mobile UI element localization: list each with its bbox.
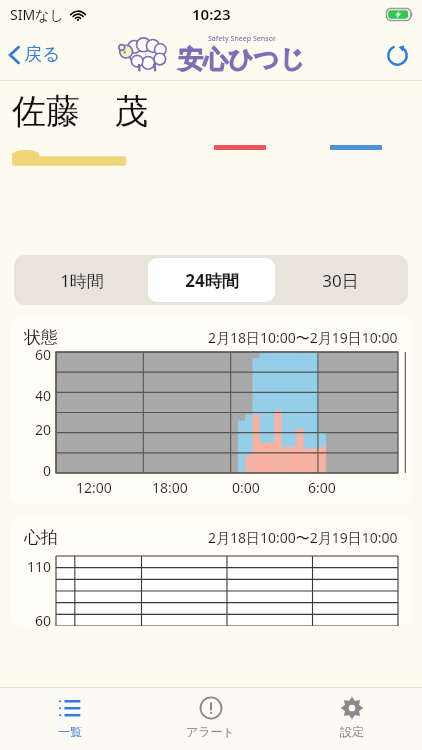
staticText: 設定 (340, 724, 364, 739)
staticText: 20 (35, 420, 52, 439)
staticText: 30日 (322, 269, 359, 292)
staticText: 6:00 (308, 478, 336, 497)
staticText: 安心ひつじ (178, 44, 305, 75)
staticText: 心拍 (24, 527, 58, 548)
button[interactable]: 30日 (277, 258, 404, 302)
staticText: SIMなし (10, 5, 64, 24)
button[interactable]: Refresh (373, 30, 422, 79)
staticText: 1時間 (60, 269, 104, 292)
button[interactable]: 24時間 (148, 258, 275, 302)
button[interactable]: 戻る (0, 37, 69, 72)
button[interactable]: 1時間 (18, 258, 146, 302)
button[interactable]: 設定 (281, 688, 422, 750)
staticText: 18:00 (152, 478, 188, 497)
staticText: 40 (35, 386, 52, 405)
staticText: 10:23 (192, 4, 231, 24)
staticText: 12:00 (76, 478, 112, 497)
button[interactable]: 状態 (10, 317, 412, 505)
staticText: 状態 (24, 327, 58, 348)
button[interactable]: アラート (140, 688, 281, 750)
staticText: 佐藤 茂 (12, 87, 148, 133)
staticText: 0:00 (232, 478, 260, 497)
button[interactable]: 心拍 (10, 517, 412, 626)
staticText: 戻る (24, 43, 61, 66)
staticText: Safety Sheep Sensor (208, 34, 276, 44)
staticText: 0 (43, 461, 52, 480)
staticText: 24時間 (185, 269, 239, 292)
staticText: アラート (186, 724, 235, 739)
button[interactable]: 一覧 (0, 688, 140, 750)
staticText: 2月18日10:00〜2月19日10:00 (208, 328, 398, 347)
staticText: 2月18日10:00〜2月19日10:00 (208, 528, 398, 547)
staticText: 60 (35, 345, 52, 364)
staticText: 一覧 (58, 724, 82, 739)
staticText: 110 (27, 557, 52, 576)
staticText: 60 (35, 611, 52, 626)
